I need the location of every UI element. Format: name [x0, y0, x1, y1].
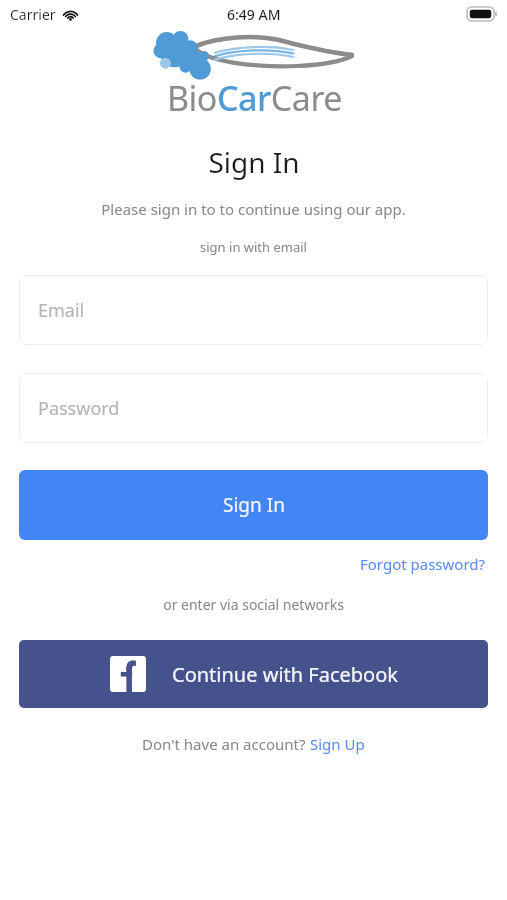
staticText: Sign In — [208, 143, 300, 181]
staticText: Email — [38, 298, 85, 323]
button[interactable]: Sign Up — [310, 734, 365, 754]
staticText: Continue with Facebook — [172, 661, 398, 688]
staticText: 6:49 AM — [227, 5, 281, 24]
staticText: sign in with email — [200, 238, 307, 256]
staticText: Password — [38, 396, 120, 421]
staticText: Forgot password? — [360, 554, 486, 574]
staticText: Carrier — [10, 5, 56, 24]
button[interactable]: Email — [19, 275, 488, 345]
staticText: BioCarCare — [167, 75, 342, 121]
button[interactable]: Forgot password? — [358, 552, 488, 576]
staticText: Sign Up — [310, 734, 365, 754]
button[interactable]: Continue with Facebook — [19, 640, 488, 708]
button[interactable]: Password — [19, 373, 488, 443]
staticText: Please sign in to to continue using our … — [101, 199, 406, 219]
staticText: Sign In — [223, 492, 285, 518]
staticText: or enter via social networks — [163, 595, 344, 614]
staticText: Don't have an account? — [142, 734, 310, 754]
button[interactable]: Sign In — [19, 470, 488, 540]
